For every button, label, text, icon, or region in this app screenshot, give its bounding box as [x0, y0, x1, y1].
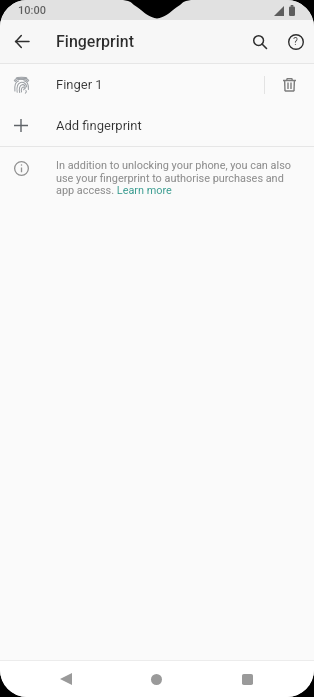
staticText: 10:00 — [18, 4, 46, 17]
button[interactable]: Help — [277, 23, 314, 60]
staticText: Add fingerprint — [56, 118, 142, 133]
staticText: ? — [293, 35, 298, 47]
staticText: In addition to unlocking your phone, you… — [56, 159, 293, 196]
button[interactable]: Delete — [265, 64, 314, 105]
staticText: Fingerprint — [56, 32, 135, 51]
button[interactable]: Recents — [225, 661, 270, 697]
staticText: Finger 1 — [56, 77, 103, 92]
button[interactable]: Back — [43, 661, 88, 697]
button[interactable]: Home — [134, 661, 179, 697]
button[interactable]: Search — [241, 23, 278, 60]
button[interactable]: Add fingerprint — [0, 105, 314, 146]
button[interactable]: Finger 1 — [0, 64, 264, 105]
button[interactable]: Back — [3, 23, 40, 60]
